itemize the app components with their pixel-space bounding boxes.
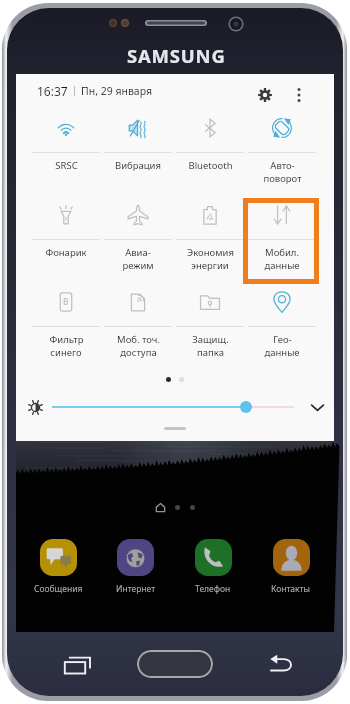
button[interactable]: SRSC (30, 111, 102, 198)
button[interactable]: Защищ. (174, 285, 246, 372)
staticText: Гео- (273, 333, 292, 346)
staticText: Bluetooth (188, 159, 233, 172)
button[interactable]: Фонарик (30, 198, 102, 285)
button[interactable]: Мобил. (246, 198, 318, 285)
button[interactable]: Экономия (174, 198, 246, 285)
button[interactable]: Сообщения (20, 539, 97, 595)
button[interactable]: Авто- (246, 111, 318, 198)
button[interactable]: B (30, 285, 102, 372)
button[interactable]: Моб. точ. (102, 285, 174, 372)
staticText: Защищ. (192, 333, 229, 346)
button[interactable]: Авиа- (102, 198, 174, 285)
button[interactable]: Интернет (97, 539, 174, 595)
staticText: Авто- (270, 159, 295, 172)
staticText: доступа (120, 346, 157, 359)
staticText: данные (264, 259, 300, 272)
staticText: поворот (263, 172, 302, 185)
staticText: Сообщения (34, 583, 83, 595)
staticText: режим (122, 259, 154, 272)
staticText: Контакты (271, 583, 311, 595)
staticText: Вибрация (115, 159, 161, 172)
button[interactable]: Expand (306, 396, 328, 418)
button[interactable]: Bluetooth (174, 111, 246, 198)
button[interactable]: Settings (251, 81, 279, 109)
button[interactable]: Recents (62, 650, 93, 681)
staticText: SAMSUNG (127, 43, 226, 68)
staticText: Мобил. (265, 246, 299, 259)
staticText: энергии (191, 259, 229, 272)
button[interactable]: Home (137, 650, 213, 678)
button[interactable]: Back (266, 650, 294, 678)
staticText: Экономия (187, 246, 234, 259)
staticText: Моб. точ. (117, 333, 160, 346)
staticText: Телефон (195, 583, 231, 595)
staticText: B (63, 296, 69, 308)
staticText: Фонарик (45, 246, 87, 259)
staticText: Фильтр (49, 333, 84, 346)
button[interactable]: Вибрация (102, 111, 174, 198)
staticText: Авиа- (125, 246, 151, 259)
staticText: SRSC (55, 159, 78, 172)
button[interactable]: Телефон (174, 539, 252, 595)
button[interactable]: Контакты (252, 539, 330, 595)
staticText: Интернет (116, 583, 156, 595)
staticText: 16:37 (37, 83, 68, 99)
staticText: синего (50, 346, 82, 359)
staticText: папка (197, 346, 224, 359)
button[interactable]: More options (285, 81, 313, 109)
button[interactable]: Гео- (246, 285, 318, 372)
staticText: Пн, 29 января (81, 84, 153, 98)
staticText: данные (264, 346, 300, 359)
